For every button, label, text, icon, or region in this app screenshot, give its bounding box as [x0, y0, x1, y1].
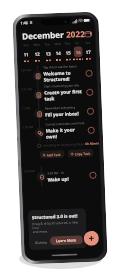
- button[interactable]: Tue: [42, 42, 53, 62]
- button[interactable]: Complete Fill your inbox!: [87, 108, 94, 115]
- staticText: Wed: [54, 42, 61, 46]
- staticText: 2022: [66, 28, 85, 40]
- staticText: Connect calendars and more: [45, 121, 85, 126]
- staticText: Learn More: [56, 237, 77, 243]
- staticText: 11 AM: [22, 106, 31, 110]
- staticText: Sun: [23, 43, 29, 47]
- staticText: 8:00 PM: [24, 169, 35, 173]
- button[interactable]: Structured 3.0 is out!: [28, 208, 87, 250]
- button[interactable]: Complete Welcome to Structured!: [85, 70, 93, 77]
- button[interactable]: 1:30 PM: [20, 120, 99, 142]
- staticText: Fri: [75, 41, 79, 45]
- button[interactable]: 9:15 AM: [19, 82, 98, 104]
- staticText: Structured 3.0 is out!: [32, 212, 78, 220]
- staticText: Dismiss: [35, 239, 48, 244]
- button[interactable]: Wed: [52, 42, 63, 61]
- staticText: 13: [46, 50, 52, 56]
- staticText: 1:46: [20, 20, 29, 25]
- button[interactable]: Complete Make it your own!: [88, 127, 95, 134]
- staticText: Fill your inbox!: [45, 110, 79, 118]
- staticText: 1:30 PM: [22, 125, 34, 129]
- staticText: December: [22, 29, 64, 41]
- staticText: Copy Task: [74, 151, 91, 155]
- staticText: 16: [76, 49, 82, 55]
- button[interactable]: Add task: [84, 231, 99, 246]
- button[interactable]: 7:00 AM: [18, 64, 97, 86]
- button[interactable]: Fri: [72, 41, 83, 60]
- button[interactable]: Sun: [20, 43, 32, 62]
- staticText: Sat: [85, 41, 90, 45]
- staticText: Wake up!: [47, 176, 70, 182]
- button[interactable]: Add Task: [39, 150, 65, 159]
- button[interactable]: Sat: [82, 41, 93, 60]
- staticText: 11: [24, 51, 30, 57]
- staticText: Start structuring your day: [44, 83, 79, 88]
- staticText: 6h 40min: [85, 141, 99, 146]
- button[interactable]: Thu: [62, 41, 73, 61]
- staticText: Tue: [44, 42, 50, 46]
- staticText: 15: [66, 49, 72, 56]
- staticText: Make it your own!: [46, 126, 86, 139]
- staticText: Add Task: [46, 152, 62, 157]
- button[interactable]: Copy Task: [67, 149, 94, 158]
- staticText: 17: [86, 49, 92, 55]
- button[interactable]: Mon: [31, 43, 43, 62]
- staticText: Mon: [33, 43, 40, 47]
- staticText: 9:30 PM · 1h: [47, 171, 64, 175]
- staticText: Anything to do during these: [43, 142, 85, 148]
- staticText: Welcome to Structured!: [43, 69, 84, 83]
- staticText: Drag & drop Structured, a new icon and m…: [32, 220, 83, 234]
- staticText: Thu: [64, 41, 70, 46]
- staticText: Tap this to see the basics: [43, 64, 77, 70]
- staticText: 7:00 AM: [20, 68, 31, 72]
- button[interactable]: 11 AM: [20, 101, 98, 123]
- staticText: 14: [56, 50, 62, 56]
- button[interactable]: Complete Create your first task: [86, 89, 93, 96]
- button[interactable]: December: [22, 28, 85, 41]
- staticText: Create your first task: [44, 88, 84, 101]
- staticText: 9:15 AM: [21, 87, 32, 91]
- button[interactable]: Complete Wake up!: [89, 172, 97, 179]
- button[interactable]: Learn More: [50, 235, 83, 245]
- staticText: Remember everything: [45, 105, 76, 111]
- button[interactable]: Dismiss: [33, 237, 50, 246]
- button[interactable]: Calendar: [85, 30, 91, 38]
- button[interactable]: 8:00 PM: [22, 164, 101, 187]
- staticText: 12: [35, 51, 41, 57]
